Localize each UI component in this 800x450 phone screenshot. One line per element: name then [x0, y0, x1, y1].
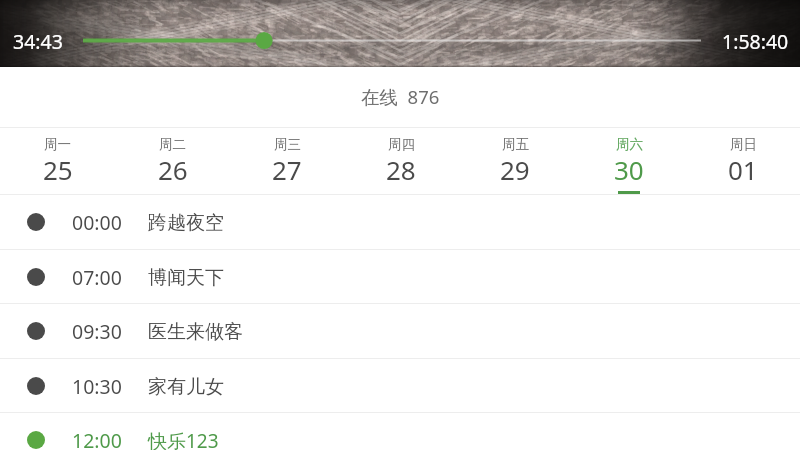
staticText: 28	[386, 152, 416, 187]
staticText: 周一	[44, 136, 71, 153]
staticText: 跨越夜空	[148, 211, 224, 235]
staticText: 周五	[502, 136, 529, 153]
staticText: 09:30	[72, 318, 122, 345]
button[interactable]: 周日	[686, 128, 800, 194]
staticText: 博闻天下	[148, 266, 224, 290]
staticText: 家有儿女	[148, 375, 224, 399]
staticText: 10:30	[72, 373, 122, 400]
staticText: 27	[272, 152, 302, 187]
staticText: 00:00	[72, 209, 122, 236]
staticText: 医生来做客	[148, 320, 243, 344]
staticText: 周二	[159, 136, 186, 153]
button[interactable]: 周一	[0, 128, 115, 194]
button[interactable]: 07:00	[0, 250, 800, 305]
staticText: 30	[614, 152, 644, 187]
button[interactable]: Video player	[0, 0, 800, 67]
staticText: 在线 876	[361, 84, 440, 109]
staticText: 26	[158, 152, 188, 187]
button[interactable]: 12:00	[0, 413, 800, 450]
button[interactable]: 周四	[344, 128, 458, 194]
button[interactable]: 在线 876	[0, 67, 800, 127]
staticText: 1:58:40	[722, 28, 789, 55]
staticText: 12:00	[72, 427, 122, 450]
staticText: 25	[43, 152, 73, 187]
staticText: 周三	[274, 136, 301, 153]
button[interactable]: 周二	[115, 128, 230, 194]
staticText: 周六	[616, 136, 643, 153]
staticText: 29	[500, 152, 530, 187]
staticText: 01	[728, 152, 758, 187]
button[interactable]: 10:30	[0, 359, 800, 414]
staticText: 周日	[730, 136, 757, 153]
button[interactable]: 09:30	[0, 304, 800, 359]
button[interactable]: 00:00	[0, 195, 800, 250]
staticText: 快乐123	[148, 428, 219, 450]
button[interactable]: 周六	[572, 128, 686, 194]
staticText: 07:00	[72, 264, 122, 291]
button[interactable]: 周五	[458, 128, 572, 194]
button[interactable]: 周三	[230, 128, 344, 194]
staticText: 34:43	[13, 28, 63, 55]
staticText: 周四	[388, 136, 415, 153]
